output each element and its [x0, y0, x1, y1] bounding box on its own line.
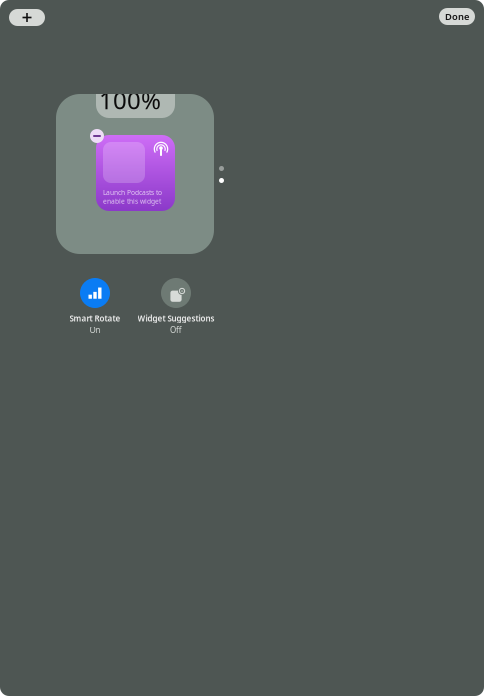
- button[interactable]: Launch Podcasts to: [96, 135, 175, 211]
- staticText: Done: [445, 10, 469, 23]
- staticText: Off: [170, 325, 182, 335]
- button[interactable]: Smart Rotate: [30, 278, 160, 335]
- button[interactable]: Add Widget: [9, 9, 45, 26]
- staticText: Smart Rotate: [69, 313, 120, 324]
- button[interactable]: Done: [439, 8, 475, 25]
- staticText: enable this widget: [103, 197, 161, 206]
- staticText: On: [89, 325, 100, 335]
- button[interactable]: Widget Suggestions: [111, 278, 241, 335]
- staticText: 100%: [99, 84, 161, 116]
- staticText: Launch Podcasts to: [103, 188, 162, 197]
- button[interactable]: Remove Widget: [90, 129, 104, 143]
- staticText: Widget Suggestions: [137, 313, 214, 324]
